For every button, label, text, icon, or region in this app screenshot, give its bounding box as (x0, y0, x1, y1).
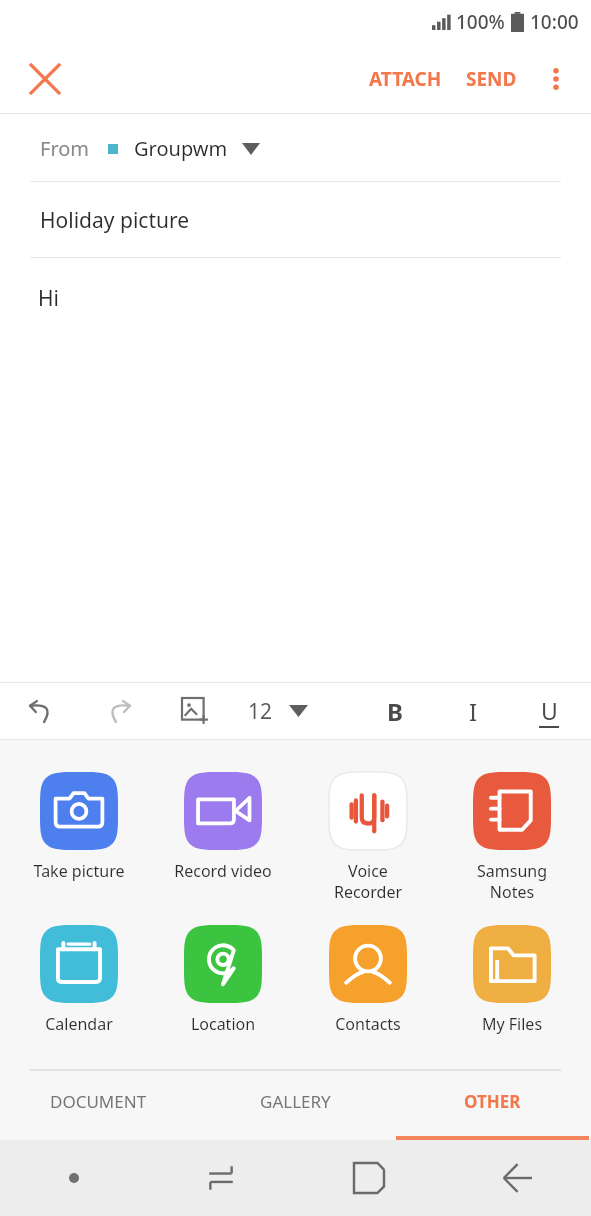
staticText: B (387, 695, 403, 728)
button[interactable]: Close (14, 48, 76, 110)
staticText: Groupwm (134, 135, 228, 162)
button[interactable]: Insert image (168, 684, 222, 738)
staticText: Voice Recorder (303, 860, 433, 903)
button[interactable]: Voice Recorder (303, 772, 433, 903)
button[interactable]: U (522, 684, 576, 738)
staticText: OTHER (464, 1090, 521, 1113)
staticText: SEND (466, 66, 517, 92)
button[interactable]: Back (443, 1140, 591, 1216)
button[interactable]: Home (295, 1140, 443, 1216)
staticText: Record video (158, 860, 288, 882)
staticText: Holiday picture (40, 206, 190, 235)
button[interactable]: DOCUMENT (0, 1071, 197, 1140)
staticText: Hi (38, 284, 59, 313)
button[interactable]: Samsung Notes (447, 772, 577, 903)
button[interactable]: OTHER (394, 1071, 591, 1140)
button[interactable]: Redo (92, 684, 146, 738)
staticText: My Files (447, 1013, 577, 1035)
staticText: Location (158, 1013, 288, 1035)
staticText: GALLERY (260, 1090, 331, 1113)
button[interactable]: Undo (14, 684, 68, 738)
staticText: Take picture (14, 860, 144, 882)
button[interactable]: Hi (0, 258, 591, 682)
button[interactable]: My Files (447, 925, 577, 1035)
button[interactable]: Calendar (14, 925, 144, 1035)
button[interactable]: Record video (158, 772, 288, 882)
button[interactable]: 12 (248, 684, 308, 738)
button[interactable]: Recents (147, 1140, 295, 1216)
staticText: I (469, 695, 478, 728)
button[interactable]: Menu dot (0, 1140, 147, 1216)
staticText: DOCUMENT (50, 1090, 147, 1113)
button[interactable]: ATTACH (357, 52, 454, 106)
button[interactable]: GALLERY (197, 1071, 394, 1140)
staticText: 100% (456, 9, 505, 35)
staticText: ATTACH (369, 66, 442, 92)
staticText: 12 (248, 697, 273, 726)
button[interactable]: I (446, 684, 500, 738)
staticText: U (541, 695, 558, 726)
button[interactable]: Holiday picture (0, 182, 591, 258)
staticText: Contacts (303, 1013, 433, 1035)
button[interactable]: Location (158, 925, 288, 1035)
button[interactable]: From (0, 114, 591, 182)
staticText: Calendar (14, 1013, 144, 1035)
staticText: Samsung Notes (447, 860, 577, 903)
staticText: 10:00 (530, 9, 579, 35)
button[interactable]: Take picture (14, 772, 144, 882)
staticText: From (40, 135, 90, 162)
button[interactable]: More options (529, 52, 583, 106)
button[interactable]: SEND (454, 52, 529, 106)
button[interactable]: B (368, 684, 422, 738)
button[interactable]: Contacts (303, 925, 433, 1035)
